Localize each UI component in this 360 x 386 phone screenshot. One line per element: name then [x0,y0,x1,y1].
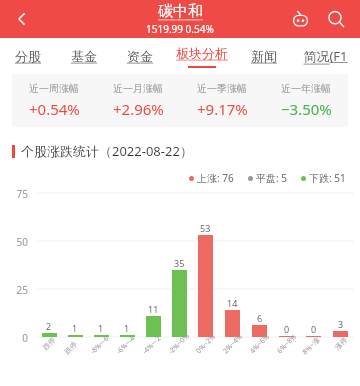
staticText: -6%~-4% [114,331,140,357]
staticText: 上涨: 76 [197,171,234,185]
staticText: 0 [311,323,317,335]
staticText: 25 [16,283,28,297]
staticText: 近一周涨幅 [29,82,79,95]
staticText: +0.54% [29,99,80,119]
staticText: +2.96% [113,99,164,119]
staticText: 碳中和 [158,2,203,21]
staticText: 板块分析 [176,45,228,61]
staticText: 跌停~-8% [63,331,87,356]
staticText: 3 [338,318,344,330]
staticText: 53 [200,222,211,234]
staticText: 1 [124,322,130,334]
staticText: +9.17% [197,99,248,119]
button[interactable]: Search [318,1,354,37]
button[interactable]: Back [0,0,44,38]
staticText: 下跌: 51 [309,171,346,185]
staticText: 跌停 [41,335,57,352]
button[interactable]: 简况(F1 [291,38,360,74]
staticText: 75 [16,187,28,201]
staticText: 11 [148,303,159,315]
button[interactable]: 基金 [56,38,112,74]
staticText: 近一季涨幅 [197,82,247,95]
staticText: 1 [98,322,104,334]
staticText: 涨停 [333,335,349,352]
staticText: -4%~-2% [140,331,166,357]
staticText: 近一月涨幅 [113,82,163,95]
button[interactable]: 新闻 [236,38,291,74]
staticText: 近一年涨幅 [281,82,331,95]
staticText: 2 [46,320,52,332]
staticText: 个股涨跌统计（2022-08-22） [21,142,193,160]
staticText: 35 [174,257,185,269]
button[interactable]: 资金 [112,38,167,74]
staticText: 1519.99 0.54% [146,22,214,36]
staticText: 0%~2% [194,332,218,356]
button[interactable]: 分股 [0,38,56,74]
staticText: 基金 [71,48,97,64]
staticText: 8%~涨停 [300,331,327,357]
staticText: -8%~-6% [88,331,114,357]
staticText: 4%~6% [248,332,272,356]
staticText: 2%~4% [221,332,245,356]
staticText: 6%~8% [275,332,299,356]
staticText: 平盘: 5 [256,171,287,185]
staticText: 简况(F1 [303,47,348,65]
staticText: 1 [72,322,78,334]
button[interactable]: Assistant robot [282,1,318,37]
staticText: 50 [16,235,28,249]
staticText: 0 [22,331,28,345]
staticText: 分股 [15,48,41,64]
staticText: 6 [257,312,263,324]
staticText: 0 [284,323,290,335]
staticText: −3.50% [281,99,332,119]
button[interactable]: 板块分析 [167,38,236,74]
staticText: -2%~0% [166,331,192,357]
staticText: 14 [227,297,238,309]
staticText: 资金 [127,48,153,64]
staticText: 新闻 [251,48,277,64]
